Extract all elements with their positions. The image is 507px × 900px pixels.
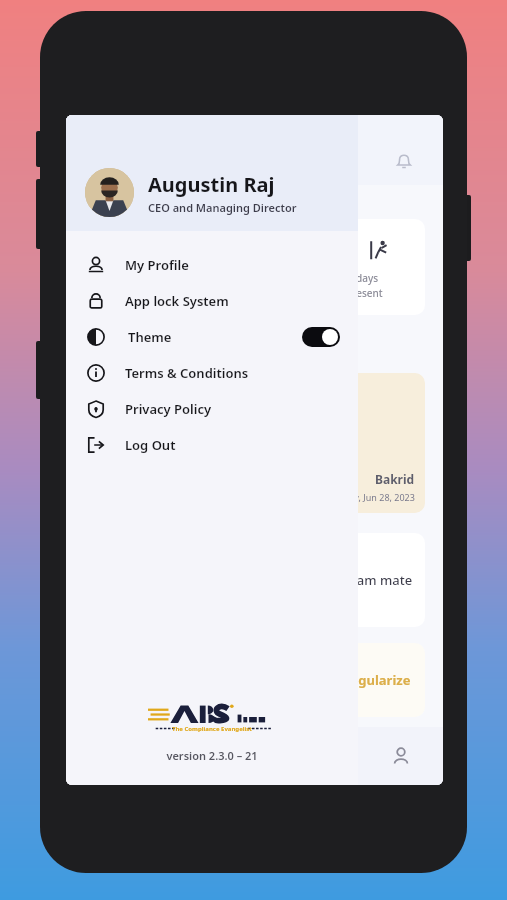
- button[interactable]: Regularize: [84, 643, 425, 717]
- staticText: App lock System: [125, 292, 229, 310]
- staticText: Theme: [128, 328, 172, 346]
- button[interactable]: Terms & Conditions: [66, 355, 358, 391]
- button[interactable]: Profile: [381, 736, 421, 776]
- button[interactable]: days: [84, 219, 425, 315]
- staticText: The Compliance Evangelist: [172, 725, 252, 733]
- staticText: Bakrid: [375, 471, 415, 487]
- staticText: Privacy Policy: [125, 400, 212, 418]
- staticText: Augustin Raj: [148, 171, 275, 198]
- staticText: Team mate: [343, 571, 413, 589]
- button[interactable]: App lock System: [66, 283, 358, 319]
- staticText: present: [346, 286, 383, 300]
- button[interactable]: Notifications: [386, 143, 422, 179]
- button[interactable]: Bakrid: [84, 373, 425, 513]
- staticText: Terms & Conditions: [125, 364, 249, 382]
- staticText: Log Out: [125, 436, 176, 454]
- button[interactable]: Privacy Policy: [66, 391, 358, 427]
- button[interactable]: Theme: [66, 319, 358, 355]
- staticText: days: [356, 271, 379, 285]
- button[interactable]: Theme toggle: [302, 327, 340, 347]
- staticText: CEO and Managing Director: [148, 200, 297, 215]
- staticText: version 2.3.0 – 21: [166, 748, 258, 763]
- button[interactable]: My Profile: [66, 247, 358, 283]
- staticText: My Profile: [125, 256, 189, 274]
- button[interactable]: Log Out: [66, 427, 358, 463]
- staticText: Wednesday, Jun 28, 2023: [310, 491, 415, 503]
- staticText: Regularize: [342, 671, 411, 689]
- button[interactable]: Augustin Raj: [66, 115, 358, 231]
- button[interactable]: Team mate: [84, 533, 425, 627]
